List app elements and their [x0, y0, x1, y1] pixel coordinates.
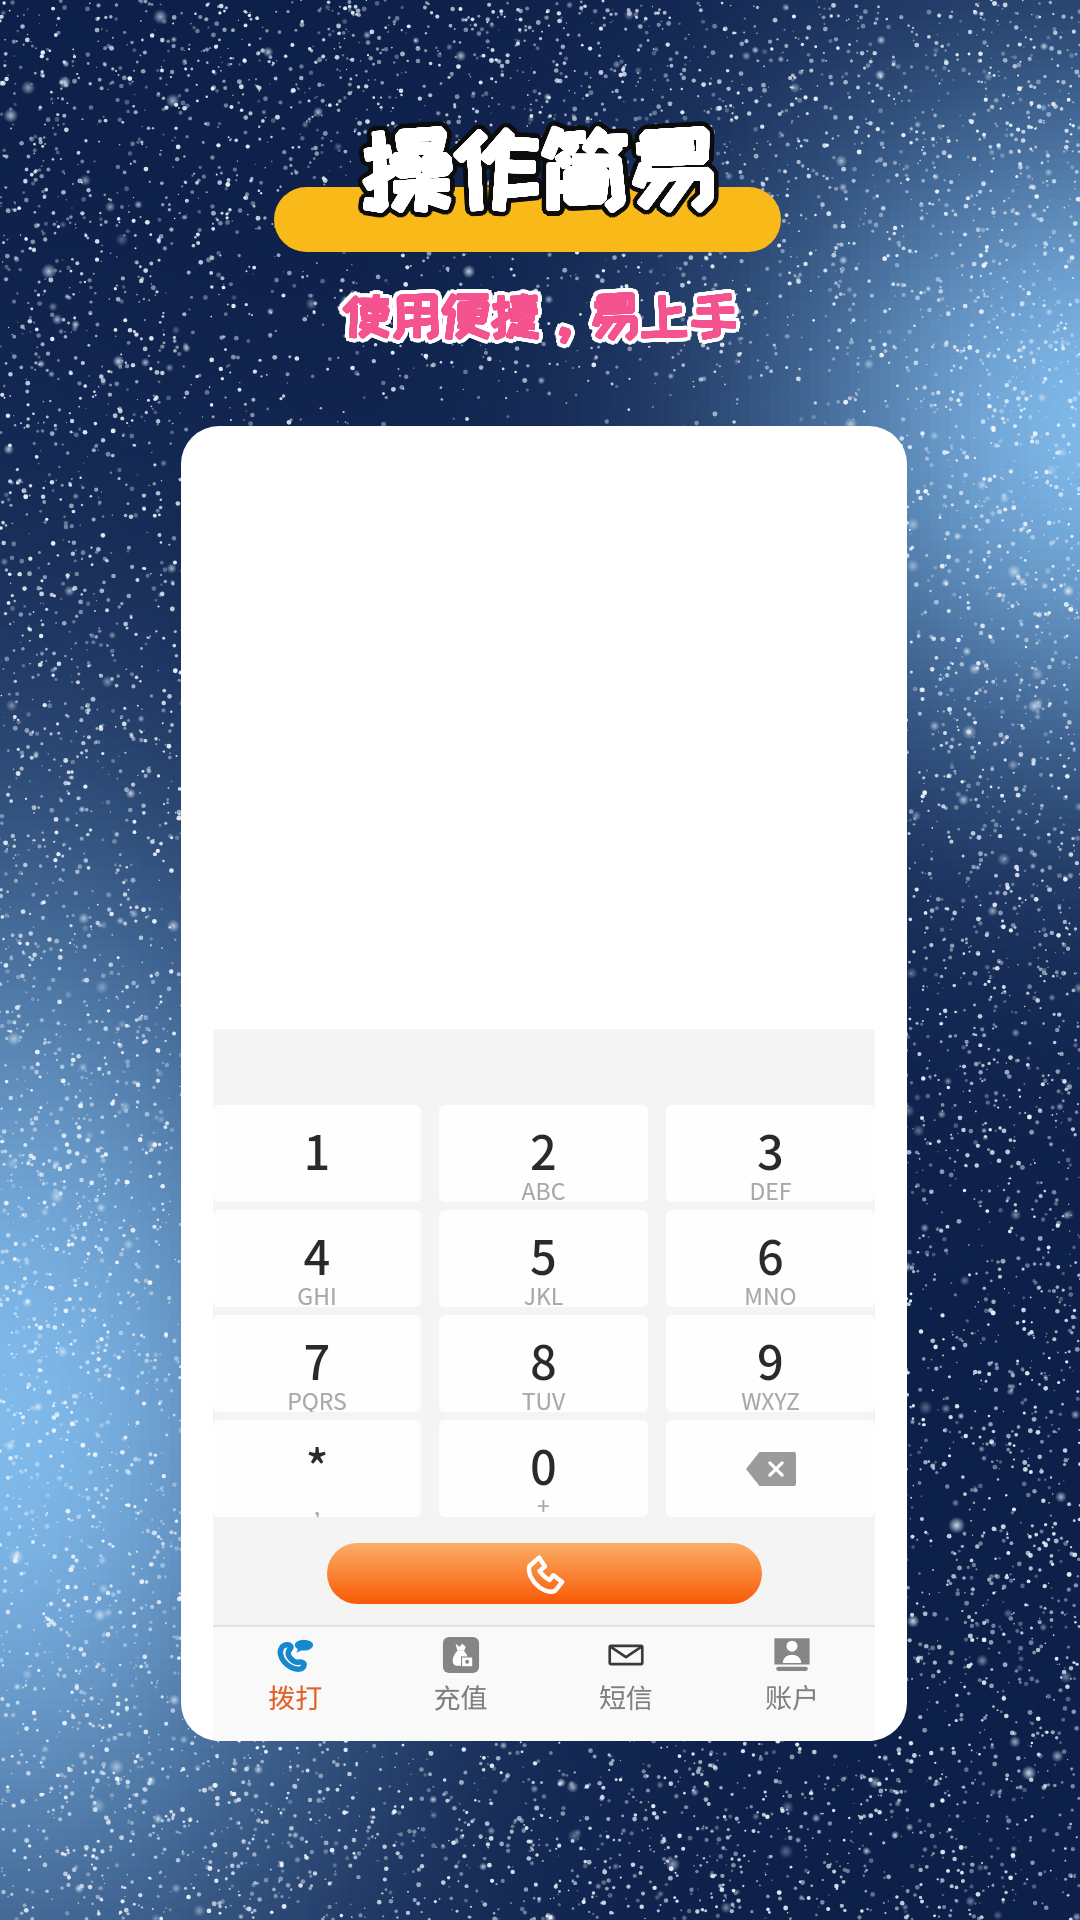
staticText: 操作简易: [362, 118, 716, 214]
staticText: +: [439, 1488, 648, 1517]
staticText: ABC: [439, 1173, 648, 1202]
staticText: 使用便捷，易上手: [345, 284, 743, 338]
staticText: 6: [666, 1220, 875, 1288]
button[interactable]: 账户: [709, 1627, 875, 1741]
other: Delete: [746, 1452, 796, 1486]
staticText: 1: [213, 1115, 421, 1183]
staticText: 账户: [709, 1677, 875, 1716]
staticText: 使用便捷，易上手: [346, 288, 744, 342]
staticText: 操作简易: [364, 118, 718, 214]
button[interactable]: 充值: [378, 1627, 543, 1741]
staticText: 9: [666, 1325, 875, 1393]
staticText: 使用便捷，易上手: [341, 288, 739, 342]
staticText: PQRS: [213, 1383, 421, 1412]
staticText: 使用便捷，易上手: [342, 288, 740, 342]
staticText: 使用便捷，易上手: [342, 289, 740, 343]
staticText: 操作简易: [364, 118, 718, 214]
staticText: 3: [666, 1115, 875, 1183]
staticText: 操作简易: [358, 125, 712, 221]
staticText: GHI: [213, 1278, 421, 1307]
staticText: 使用便捷，易上手: [336, 289, 734, 343]
staticText: 拨打: [213, 1677, 378, 1716]
staticText: *: [213, 1430, 421, 1498]
button[interactable]: 2: [439, 1105, 648, 1202]
staticText: ,: [213, 1488, 421, 1517]
staticText: 操作简易: [365, 119, 719, 215]
button[interactable]: 1: [213, 1105, 421, 1202]
staticText: 操作简易: [363, 122, 717, 218]
staticText: 操作简易: [357, 124, 711, 220]
staticText: 使用便捷，易上手: [342, 289, 740, 343]
staticText: 使用便捷，易上手: [340, 288, 738, 342]
staticText: 操作简易: [362, 122, 716, 218]
staticText: 使用便捷，易上手: [337, 286, 735, 340]
staticText: 操作简易: [364, 121, 718, 217]
staticText: 操作简易: [365, 121, 719, 217]
staticText: 使用便捷，易上手: [337, 291, 735, 345]
staticText: 使用便捷，易上手: [342, 287, 740, 341]
button[interactable]: 拨打: [213, 1627, 378, 1741]
staticText: 使用便捷，易上手: [339, 284, 737, 338]
button[interactable]: 5: [439, 1210, 648, 1307]
staticText: 操作简易: [363, 113, 717, 209]
staticText: 使用便捷，易上手: [342, 283, 740, 337]
staticText: 使用便捷，易上手: [342, 289, 740, 343]
staticText: 操作简易: [362, 118, 716, 214]
staticText: 使用便捷，易上手: [339, 292, 737, 346]
staticText: 使用便捷，易上手: [342, 293, 740, 347]
staticText: 使用便捷，易上手: [341, 287, 739, 341]
staticText: 操作简易: [367, 114, 721, 210]
button[interactable]: 6: [666, 1210, 875, 1307]
staticText: TUV: [439, 1383, 648, 1412]
staticText: 操作简易: [361, 119, 715, 215]
staticText: 使用便捷，易上手: [342, 288, 740, 342]
staticText: 操作简易: [370, 118, 724, 214]
staticText: 5: [439, 1220, 648, 1288]
staticText: 使用便捷，易上手: [341, 287, 739, 341]
staticText: 操作简易: [369, 117, 723, 213]
staticText: 操作简易: [362, 122, 716, 218]
staticText: 操作简易: [361, 119, 715, 215]
staticText: 操作简易: [365, 113, 719, 209]
staticText: 使用便捷，易上手: [340, 293, 738, 347]
staticText: 使用便捷，易上手: [342, 287, 740, 341]
staticText: 操作简易: [361, 121, 715, 217]
staticText: 操作简易: [365, 127, 719, 223]
staticText: 操作简易: [362, 119, 716, 215]
button[interactable]: Call: [327, 1543, 762, 1604]
button[interactable]: *: [213, 1420, 421, 1517]
staticText: 操作简易: [358, 115, 712, 211]
staticText: 7: [213, 1325, 421, 1393]
staticText: 操作简易: [364, 122, 718, 218]
staticText: 使用便捷，易上手: [341, 289, 739, 343]
staticText: 操作简易: [367, 126, 721, 222]
staticText: 使用便捷，易上手: [342, 288, 740, 342]
staticText: 使用便捷，易上手: [341, 287, 739, 341]
button[interactable]: 短信: [543, 1627, 709, 1741]
staticText: 操作简易: [356, 118, 710, 214]
staticText: 操作简易: [357, 117, 711, 213]
staticText: 操作简易: [365, 119, 719, 215]
button[interactable]: 8: [439, 1315, 648, 1412]
button[interactable]: Delete: [666, 1420, 875, 1517]
staticText: 使用便捷，易上手: [341, 289, 739, 343]
button[interactable]: 3: [666, 1105, 875, 1202]
staticText: 操作简易: [365, 120, 719, 216]
staticText: 使用便捷，易上手: [344, 292, 742, 346]
button[interactable]: 7: [213, 1315, 421, 1412]
staticText: 8: [439, 1325, 648, 1393]
staticText: 使用便捷，易上手: [340, 288, 738, 342]
staticText: 使用便捷，易上手: [337, 284, 735, 338]
staticText: 0: [439, 1430, 648, 1498]
staticText: 使用便捷，易上手: [340, 287, 738, 341]
button[interactable]: 0: [439, 1420, 648, 1517]
button[interactable]: 4: [213, 1210, 421, 1307]
staticText: 使用便捷，易上手: [341, 293, 739, 347]
staticText: 操作简易: [370, 122, 724, 218]
staticText: 使用便捷，易上手: [342, 288, 740, 342]
button[interactable]: 9: [666, 1315, 875, 1412]
staticText: 操作简易: [361, 127, 715, 223]
staticText: 2: [439, 1115, 648, 1183]
staticText: 使用便捷，易上手: [340, 289, 738, 343]
staticText: 短信: [543, 1677, 709, 1716]
